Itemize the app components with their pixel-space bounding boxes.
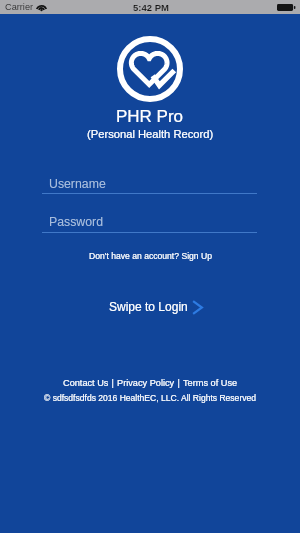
staticText: | [109, 378, 117, 388]
staticText: Swipe to Login [109, 300, 188, 313]
staticText: PHR Pro [116, 107, 184, 126]
other: Battery [277, 4, 296, 11]
staticText: 5:42 PM [133, 2, 169, 13]
button[interactable]: Don't have an account? Sign Up [87, 250, 214, 262]
other: PHR Pro logo [117, 36, 183, 102]
staticText: Username [49, 177, 106, 191]
button[interactable]: Terms of Use [183, 378, 238, 388]
staticText: | [175, 378, 183, 388]
button[interactable]: Privacy Policy [117, 378, 175, 388]
staticText: (Personal Health Record) [87, 128, 214, 141]
other: Wi-Fi [37, 4, 46, 11]
button[interactable]: Swipe to Login [105, 296, 209, 320]
staticText: Carrier [5, 2, 34, 12]
button[interactable]: Username [42, 170, 257, 194]
button[interactable]: Password [42, 208, 257, 233]
button[interactable]: Contact Us [63, 378, 109, 388]
staticText: Password [49, 215, 103, 229]
staticText: © sdfsdfsdfds 2016 HealthEC, LLC. All Ri… [44, 393, 257, 403]
